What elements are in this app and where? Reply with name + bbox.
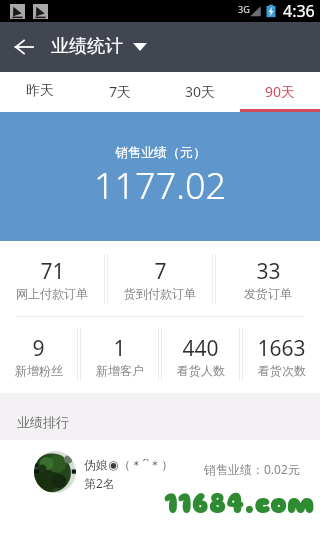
staticText: 7天 (109, 82, 132, 101)
button[interactable]: 1663 (243, 317, 320, 392)
staticText: 新增粉丝 (15, 363, 63, 378)
staticText: 90天 (265, 82, 296, 101)
staticText: 7 (154, 257, 167, 286)
button[interactable]: 9 (0, 317, 77, 392)
staticText: 业绩统计 (51, 35, 123, 58)
staticText: 伪娘◉（＊ˊˋ＊） (84, 456, 174, 472)
button[interactable]: Back (0, 22, 48, 72)
staticText: 看货次数 (258, 363, 306, 378)
staticText: 业绩排行 (17, 414, 69, 430)
staticText: 1663 (257, 334, 306, 363)
button[interactable]: 440 (162, 317, 239, 392)
staticText: 11684.com (164, 486, 315, 521)
staticText: 新增客户 (96, 363, 144, 378)
staticText: 3G (238, 3, 250, 15)
button[interactable]: 7天 (80, 72, 160, 112)
staticText: 货到付款订单 (124, 286, 196, 301)
staticText: 昨天 (26, 82, 54, 100)
staticText: 看货人数 (177, 363, 225, 378)
staticText: 440 (182, 334, 219, 363)
button[interactable]: 昨天 (0, 72, 80, 112)
button[interactable]: 伪娘◉（＊ˊˋ＊） (0, 440, 320, 504)
button[interactable]: 7 (108, 241, 212, 316)
staticText: 网上付款订单 (16, 286, 88, 301)
staticText: 30天 (185, 82, 216, 101)
staticText: 71 (40, 257, 65, 286)
button[interactable]: 90天 (240, 72, 320, 112)
staticText: 4:36 (283, 0, 315, 22)
staticText: 1177.02 (94, 161, 227, 210)
staticText: 销售业绩（元） (115, 144, 206, 160)
button[interactable]: 33 (216, 241, 320, 316)
staticText: 33 (256, 257, 281, 286)
button[interactable]: 业绩统计 (51, 35, 153, 59)
staticText: 9 (32, 334, 45, 363)
staticText: 第2名 (84, 475, 115, 491)
staticText: 发货订单 (244, 286, 292, 301)
button[interactable]: 30天 (160, 72, 240, 112)
button[interactable]: 71 (0, 241, 104, 316)
staticText: 销售业绩：0.02元 (204, 461, 300, 477)
staticText: 1 (113, 334, 126, 363)
button[interactable]: 1 (81, 317, 158, 392)
